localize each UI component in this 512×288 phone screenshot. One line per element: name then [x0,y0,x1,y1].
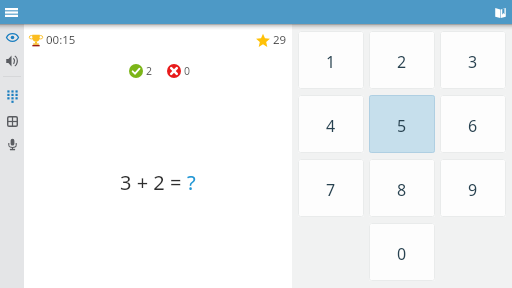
button[interactable]: 1 [298,31,364,89]
staticText: 8 [397,179,407,201]
button[interactable]: 0 [369,223,435,281]
button[interactable]: Menu [0,1,22,23]
button[interactable]: 2 [369,31,435,89]
button[interactable]: Sound [0,49,24,73]
staticText: 3 + 2 = [120,169,187,196]
button[interactable]: Keypad [0,84,24,108]
staticText: 1 [326,51,336,73]
staticText: 2 [146,64,153,78]
button[interactable]: Grid [0,109,24,133]
button[interactable]: Show answer [0,25,24,49]
staticText: 5 [397,115,407,137]
button[interactable]: 4 [298,95,364,153]
staticText: 4 [326,115,336,137]
staticText: 00:15 [46,32,76,48]
button[interactable]: 8 [369,159,435,217]
button[interactable]: Dictionary [489,1,511,23]
staticText: 2 [397,51,407,73]
staticText: 9 [468,179,478,201]
staticText: 3 [468,51,478,73]
staticText: 6 [468,115,478,137]
staticText: ? [187,169,196,196]
button[interactable]: 9 [440,159,506,217]
staticText: 0 [397,243,407,265]
button[interactable]: 3 [440,31,506,89]
button[interactable]: Microphone [0,132,24,156]
staticText: 29 [273,32,287,48]
staticText: 0 [184,64,191,78]
button[interactable]: 7 [298,159,364,217]
button[interactable]: 6 [440,95,506,153]
staticText: 7 [326,179,336,201]
button[interactable]: 5 [369,95,435,153]
